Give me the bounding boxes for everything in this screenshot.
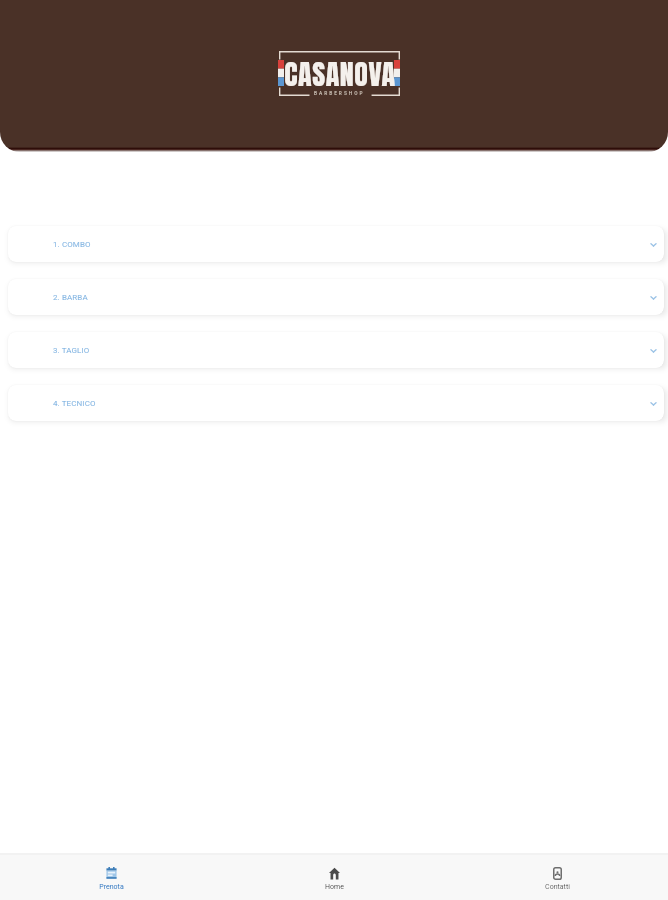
other: Espandi	[649, 293, 658, 302]
button[interactable]: 2. BARBA	[8, 279, 664, 315]
button[interactable]: Contatti	[512, 862, 602, 894]
other: Espandi	[649, 346, 658, 355]
staticText: 2. BARBA	[53, 293, 88, 302]
staticText: 1. COMBO	[53, 240, 91, 249]
staticText: CASANOVA	[284, 53, 396, 95]
staticText: Contatti	[545, 883, 570, 891]
staticText: 3. TAGLIO	[53, 346, 90, 355]
staticText: Prenota	[99, 883, 124, 891]
other: Espandi	[649, 240, 658, 249]
staticText: Home	[325, 883, 344, 891]
staticText: BARBERSHOP	[314, 91, 365, 97]
other: Espandi	[649, 399, 658, 408]
button[interactable]: Home	[289, 862, 379, 894]
button[interactable]: 4. TECNICO	[8, 385, 664, 421]
button[interactable]: Prenota	[66, 862, 156, 894]
button[interactable]: 1. COMBO	[8, 226, 664, 262]
button[interactable]: 3. TAGLIO	[8, 332, 664, 368]
staticText: 4. TECNICO	[53, 399, 96, 408]
